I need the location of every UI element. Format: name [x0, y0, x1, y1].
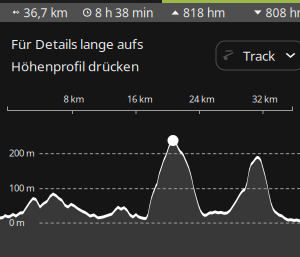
staticText: Für Details lange aufs	[11, 35, 143, 53]
staticText: 200 m	[9, 147, 35, 159]
staticText: 808 hm	[266, 4, 300, 20]
button[interactable]: Track	[216, 41, 300, 70]
staticText: 818 hm	[183, 4, 225, 20]
staticText: 32 km	[252, 93, 278, 105]
staticText: 0 m	[9, 216, 25, 229]
staticText: 100 m	[9, 182, 35, 194]
staticText: 36,7 km	[23, 4, 67, 20]
staticText: 16 km	[127, 93, 153, 105]
staticText: Track	[243, 47, 275, 64]
staticText: 8 km	[63, 93, 84, 105]
staticText: 8 h 38 min	[95, 4, 153, 20]
staticText: 24 km	[189, 93, 215, 105]
staticText: Höhenprofil drücken	[11, 57, 139, 75]
